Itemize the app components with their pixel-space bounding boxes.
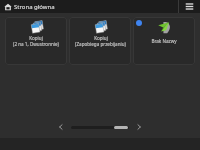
staticText: Strona główna (14, 3, 55, 11)
button[interactable]: Next page (134, 122, 144, 132)
button[interactable]: Home (2, 1, 13, 12)
button[interactable]: Previous page (56, 122, 66, 132)
button[interactable]: Menu (179, 0, 200, 13)
staticText: Brak Nazwy (151, 38, 177, 44)
button[interactable]: Brak Nazwy (133, 17, 195, 65)
staticText: Kopiuj (94, 35, 108, 41)
staticText: (Zapobiega przebijaniu) (75, 41, 126, 47)
staticText: Kopiuj (29, 35, 43, 41)
staticText: (2 na 1, Dwustronnie) (13, 41, 59, 47)
button[interactable]: Kopiuj (69, 17, 131, 65)
button[interactable]: Kopiuj (5, 17, 67, 65)
